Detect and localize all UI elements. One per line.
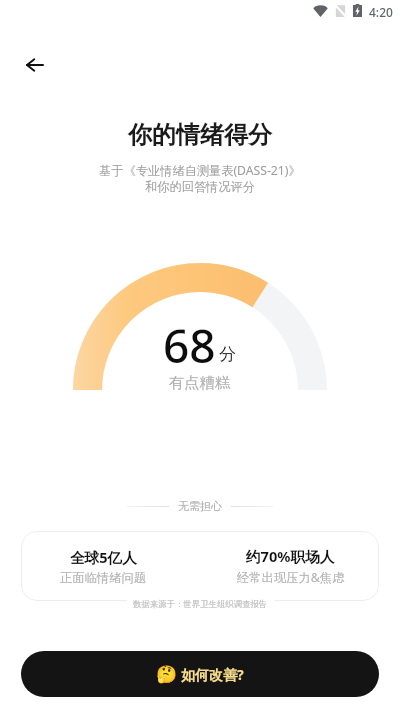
staticText: 正面临情绪问题 xyxy=(60,570,147,585)
staticText: 无需担心 xyxy=(178,499,222,513)
staticText: 如何改善? xyxy=(181,665,244,684)
staticText: 有点糟糕 xyxy=(169,373,231,392)
button[interactable]: Back xyxy=(13,43,57,87)
staticText: 约70%职场人 xyxy=(246,546,335,566)
button[interactable]: 🤔 xyxy=(21,651,379,697)
staticText: 分 xyxy=(219,344,236,365)
staticText: 全球5亿人 xyxy=(70,547,137,567)
staticText: 经常出现压力&焦虑 xyxy=(237,569,345,586)
staticText: 和你的回答情况评分 xyxy=(0,179,400,194)
staticText: 你的情绪得分 xyxy=(0,120,400,150)
staticText: 基于《专业情绪自测量表(DASS-21)》 xyxy=(0,162,400,179)
staticText: 🤔 xyxy=(156,664,178,684)
staticText: 4:20 xyxy=(369,4,393,20)
staticText: 数据来源于：世界卫生组织调查报告 xyxy=(133,599,268,610)
staticText: 68 xyxy=(163,314,216,377)
